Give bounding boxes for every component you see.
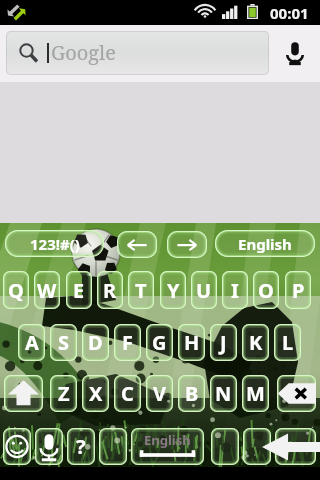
button[interactable]: Q	[3, 271, 29, 309]
button[interactable]: Shift	[4, 375, 43, 412]
staticText: English	[238, 234, 292, 254]
staticText: B	[185, 380, 199, 407]
staticText: X	[89, 380, 103, 407]
staticText: Y	[167, 277, 180, 304]
button[interactable]: English	[131, 428, 204, 465]
button[interactable]: W	[34, 271, 60, 309]
button[interactable]: E	[66, 271, 92, 309]
staticText: 00:01	[270, 3, 309, 23]
staticText: E	[73, 277, 85, 304]
staticText: ?	[76, 433, 86, 460]
button[interactable]: Enter	[275, 428, 316, 465]
staticText: N	[215, 380, 232, 407]
button[interactable]: G	[146, 324, 173, 361]
staticText: C	[121, 380, 134, 407]
button[interactable]: 123!#()	[5, 230, 104, 257]
button[interactable]: Z	[50, 375, 77, 412]
button[interactable]: Voice input	[35, 428, 63, 465]
button[interactable]: Next	[167, 231, 207, 258]
button[interactable]: N	[210, 375, 237, 412]
staticText: O	[258, 277, 274, 304]
button[interactable]: X	[82, 375, 109, 412]
button[interactable]: V	[146, 375, 173, 412]
staticText: G	[152, 329, 167, 356]
button[interactable]: Comma	[99, 428, 127, 465]
staticText: M	[246, 380, 265, 407]
button[interactable]: Period	[211, 428, 239, 465]
staticText: A	[25, 329, 39, 356]
staticText: 123!#()	[30, 234, 80, 254]
button[interactable]: L	[274, 324, 301, 361]
button[interactable]: T	[128, 271, 154, 309]
staticText: V	[153, 380, 166, 407]
button[interactable]: Voice search	[286, 41, 304, 65]
staticText: S	[58, 329, 70, 356]
button[interactable]: I	[222, 271, 248, 309]
staticText: K	[249, 329, 263, 356]
staticText: P	[292, 277, 305, 304]
button[interactable]: A	[18, 324, 45, 361]
button[interactable]: Exclamation	[243, 428, 271, 465]
button[interactable]: M	[242, 375, 269, 412]
staticText: Z	[58, 380, 70, 407]
staticText: L	[282, 329, 294, 356]
button[interactable]: J	[210, 324, 237, 361]
button[interactable]: Emoji	[3, 428, 31, 465]
staticText: I	[231, 277, 239, 304]
button[interactable]: English	[215, 230, 315, 257]
button[interactable]: U	[191, 271, 217, 309]
button[interactable]: ?	[67, 428, 95, 465]
button[interactable]: Previous	[117, 231, 157, 258]
staticText: R	[103, 277, 117, 304]
button[interactable]: B	[178, 375, 205, 412]
button[interactable]: Y	[160, 271, 186, 309]
staticText: T	[135, 277, 147, 304]
staticText: Q	[8, 277, 24, 304]
staticText: Google	[51, 39, 117, 66]
button[interactable]: S	[50, 324, 77, 361]
staticText: U	[196, 277, 212, 304]
button[interactable]: F	[114, 324, 141, 361]
staticText: F	[122, 329, 133, 356]
button[interactable]: P	[285, 271, 311, 309]
staticText: H	[184, 329, 200, 356]
button[interactable]: Backspace	[277, 375, 316, 412]
staticText: English	[144, 431, 191, 449]
button[interactable]: K	[242, 324, 269, 361]
button[interactable]: H	[178, 324, 205, 361]
staticText: D	[88, 329, 103, 356]
staticText: W	[37, 277, 57, 304]
staticText: J	[220, 329, 227, 356]
button[interactable]: R	[97, 271, 123, 309]
button[interactable]: O	[253, 271, 279, 309]
button[interactable]: D	[82, 324, 109, 361]
button[interactable]: C	[114, 375, 141, 412]
button[interactable]: Google	[6, 31, 269, 75]
